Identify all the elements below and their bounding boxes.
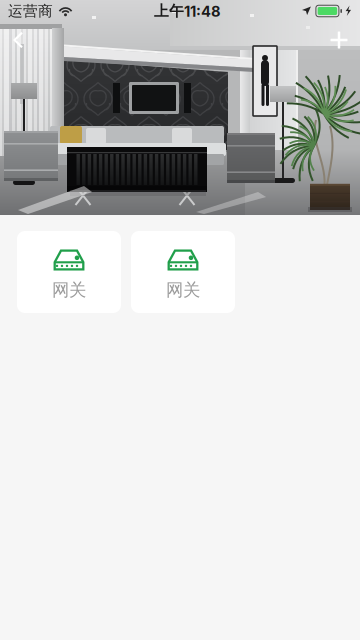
button[interactable]: 网关 [131,231,235,313]
staticText: 网关 [166,279,200,301]
staticText: 上午11:48 [154,2,221,20]
button[interactable]: 网关 [17,231,121,313]
staticText: 运营商 [8,2,53,20]
staticText: 网关 [52,279,86,301]
button[interactable]: Back [0,22,40,57]
button[interactable]: Add [316,22,360,58]
